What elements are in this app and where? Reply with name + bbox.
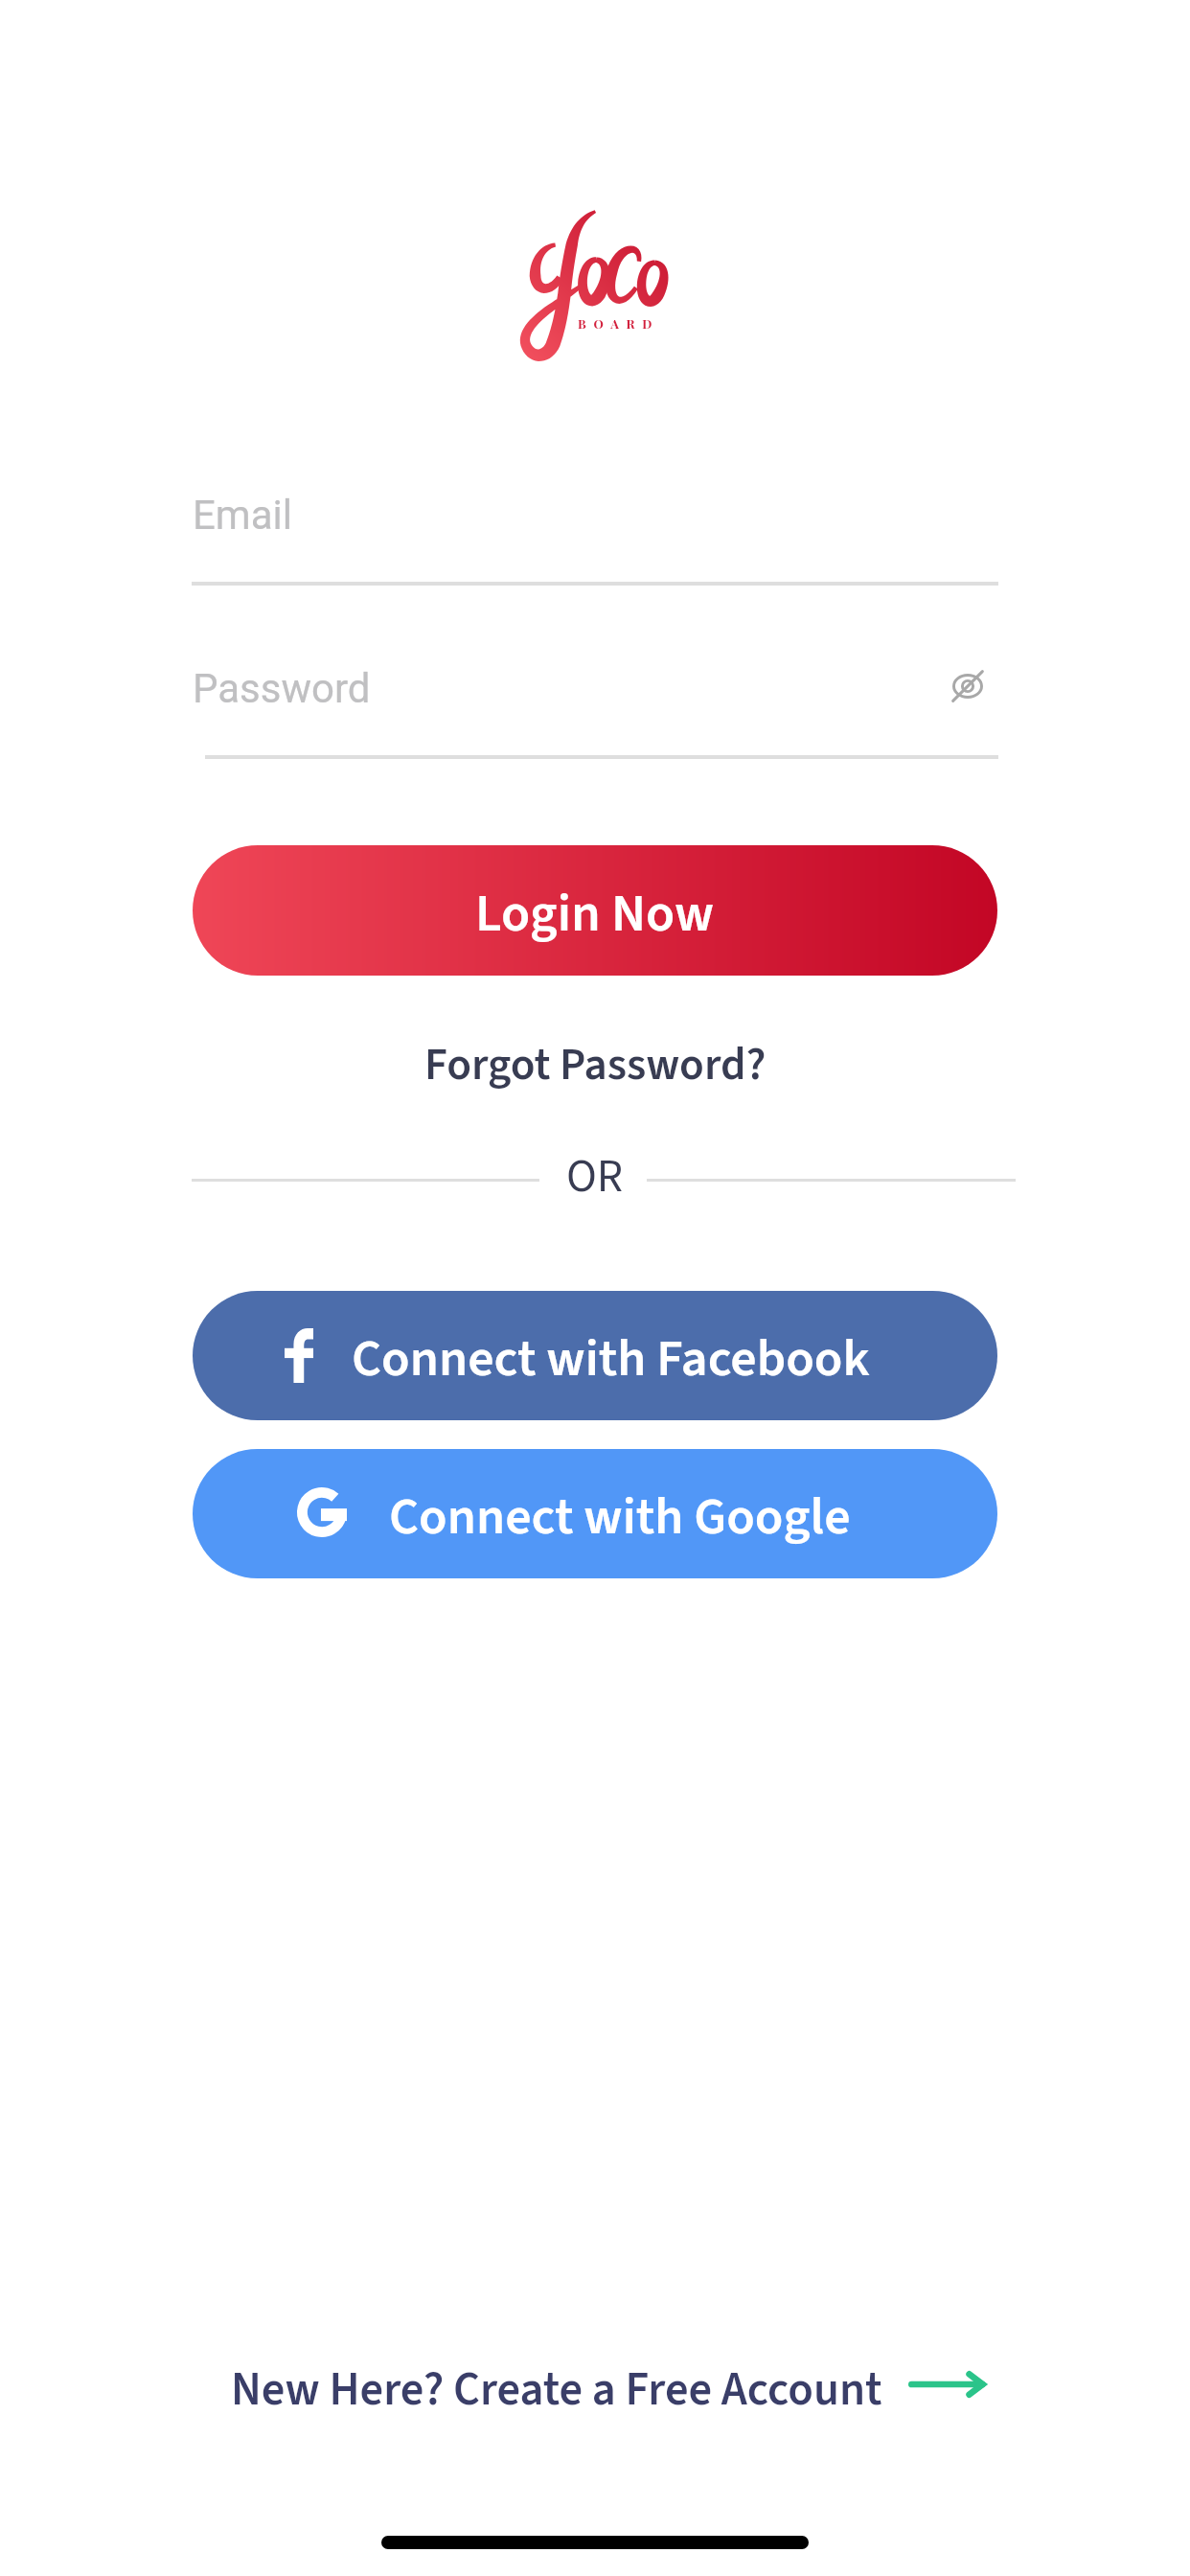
button[interactable]: Connect with Google	[193, 1449, 997, 1578]
staticText: Password	[193, 665, 371, 712]
button[interactable]: Show password	[922, 640, 1014, 732]
staticText: Connect with Facebook	[352, 1322, 870, 1396]
staticText: Connect with Google	[389, 1481, 851, 1554]
button[interactable]: Forgot Password?	[394, 1022, 796, 1108]
staticText: Email	[193, 492, 292, 539]
staticText: Forgot Password?	[424, 1033, 767, 1097]
staticText: OR	[566, 1144, 624, 1209]
button[interactable]: Login Now	[193, 845, 997, 976]
button[interactable]: New Here? Create a Free Account	[231, 2333, 988, 2446]
staticText: New Here? Create a Free Account	[231, 2357, 882, 2423]
button[interactable]: Connect with Facebook	[193, 1291, 997, 1420]
staticText: BOARD	[578, 315, 660, 332]
staticText: Login Now	[475, 877, 715, 952]
